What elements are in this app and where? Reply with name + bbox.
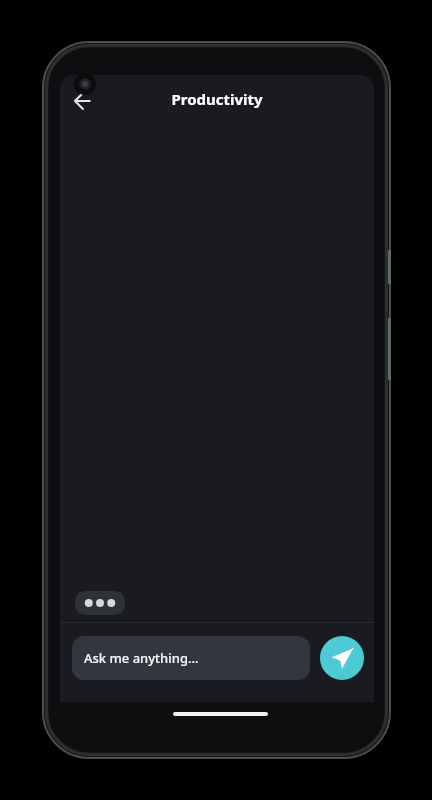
staticText: Productivity [171, 89, 263, 109]
staticText: Ask me anything... [84, 649, 199, 667]
button[interactable]: Assistant is typing [75, 591, 125, 615]
button[interactable]: Send [320, 636, 364, 680]
button[interactable]: Back [66, 83, 98, 115]
button[interactable]: Ask me anything... [72, 636, 310, 680]
